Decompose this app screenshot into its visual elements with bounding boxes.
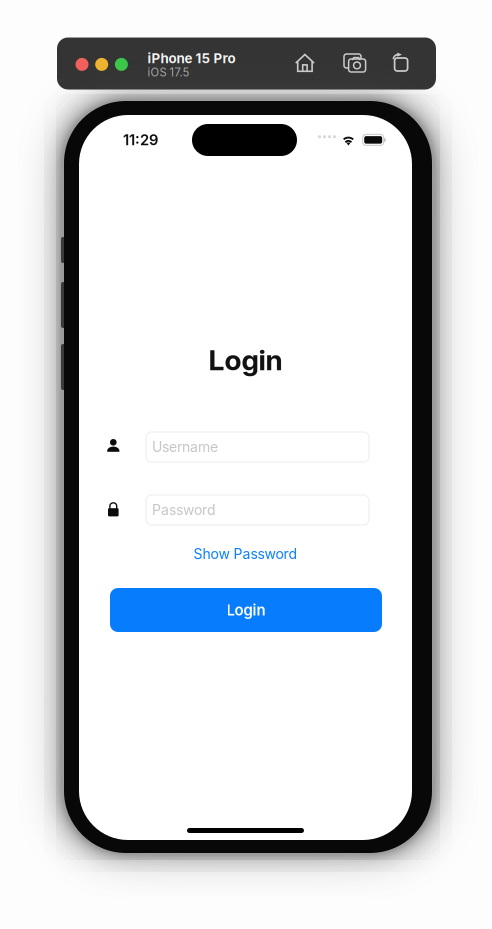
staticText: iOS 17.5 bbox=[148, 66, 190, 79]
button[interactable]: Login bbox=[110, 588, 382, 632]
button[interactable]: Home bbox=[295, 53, 315, 72]
staticText: Password bbox=[152, 501, 216, 518]
staticText: Login bbox=[208, 343, 282, 377]
button[interactable]: Rotate bbox=[390, 53, 408, 71]
staticText: Login bbox=[226, 601, 265, 619]
button[interactable]: Screenshot bbox=[344, 54, 366, 72]
staticText: iPhone 15 Pro bbox=[148, 50, 236, 66]
staticText: Username bbox=[152, 438, 218, 455]
staticText: 11:29 bbox=[123, 131, 158, 149]
staticText: Show Password bbox=[193, 545, 297, 562]
button[interactable]: Show Password bbox=[189, 545, 302, 563]
